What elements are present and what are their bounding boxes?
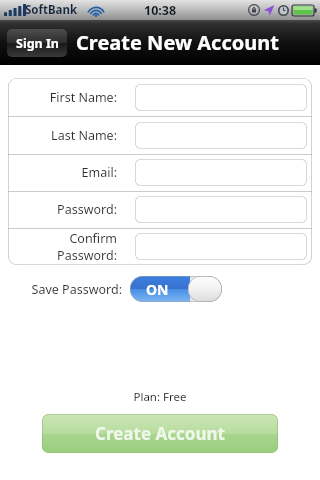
- staticText: Sign In: [16, 35, 59, 52]
- staticText: First Name:: [8, 89, 117, 106]
- button[interactable]: Confirm Password:: [8, 228, 312, 265]
- button[interactable]: First Name:: [8, 78, 312, 116]
- button[interactable]: [135, 159, 307, 186]
- staticText: 10:38: [144, 2, 177, 19]
- staticText: Email:: [8, 164, 117, 181]
- staticText: Create New Account: [76, 29, 279, 56]
- button[interactable]: Last Name:: [8, 116, 312, 154]
- button[interactable]: [135, 84, 307, 111]
- button[interactable]: Password:: [8, 191, 312, 228]
- button[interactable]: Sign In: [7, 29, 67, 57]
- button[interactable]: Save Password toggle, on: [130, 276, 222, 302]
- staticText: Plan: Free: [0, 389, 320, 405]
- staticText: Create Account: [95, 422, 225, 445]
- button[interactable]: Create Account: [42, 414, 278, 453]
- staticText: Confirm Password:: [8, 230, 117, 264]
- staticText: Password:: [8, 201, 117, 218]
- button[interactable]: Email:: [8, 154, 312, 191]
- staticText: Save Password:: [0, 281, 122, 298]
- button[interactable]: [135, 233, 307, 260]
- button[interactable]: [135, 196, 307, 223]
- button[interactable]: [135, 122, 307, 149]
- staticText: SoftBank: [25, 2, 78, 18]
- staticText: ON: [146, 280, 169, 299]
- staticText: Last Name:: [8, 127, 117, 144]
